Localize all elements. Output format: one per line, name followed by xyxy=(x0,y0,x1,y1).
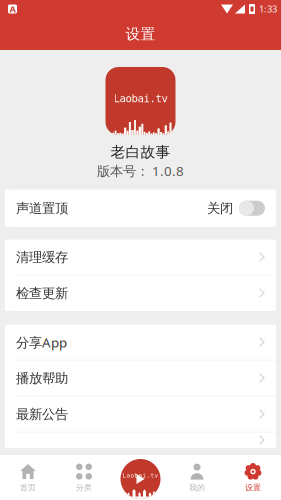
staticText: 声道置顶 xyxy=(16,200,68,216)
staticText: 我的 xyxy=(189,483,205,492)
button[interactable]: 清理缓存 xyxy=(5,240,276,275)
staticText: Laobai.tv xyxy=(122,472,158,479)
button[interactable]: 分享App xyxy=(5,325,276,360)
button[interactable]: 设置 xyxy=(225,455,281,500)
button[interactable]: 检查更新 xyxy=(5,276,276,311)
staticText: 播放帮助 xyxy=(16,370,68,386)
staticText: 设置 xyxy=(125,25,155,43)
staticText: 分享App xyxy=(16,333,67,351)
staticText: A xyxy=(9,3,15,15)
button[interactable]: 首页 xyxy=(0,455,56,500)
staticText: 最新公告 xyxy=(16,406,68,422)
staticText: 1:33 xyxy=(259,3,277,15)
button[interactable]: 分类 xyxy=(56,455,112,500)
staticText: Laobai.tv xyxy=(113,92,167,105)
staticText: 检查更新 xyxy=(16,285,68,301)
staticText: 老白故事 xyxy=(110,143,170,161)
staticText: 清理缓存 xyxy=(16,249,68,265)
button[interactable]: Play xyxy=(120,459,160,500)
staticText: 版本号： 1.0.8 xyxy=(97,162,184,180)
button[interactable]: 最新公告 xyxy=(5,397,276,432)
button[interactable]: 声道置顶 xyxy=(5,190,276,227)
button[interactable]: 播放帮助 xyxy=(5,361,276,396)
staticText: 关闭 xyxy=(207,200,233,216)
staticText: 设置 xyxy=(245,483,261,492)
staticText: 首页 xyxy=(20,483,36,492)
staticText: 分类 xyxy=(76,483,92,492)
button[interactable]: 我的 xyxy=(169,455,225,500)
